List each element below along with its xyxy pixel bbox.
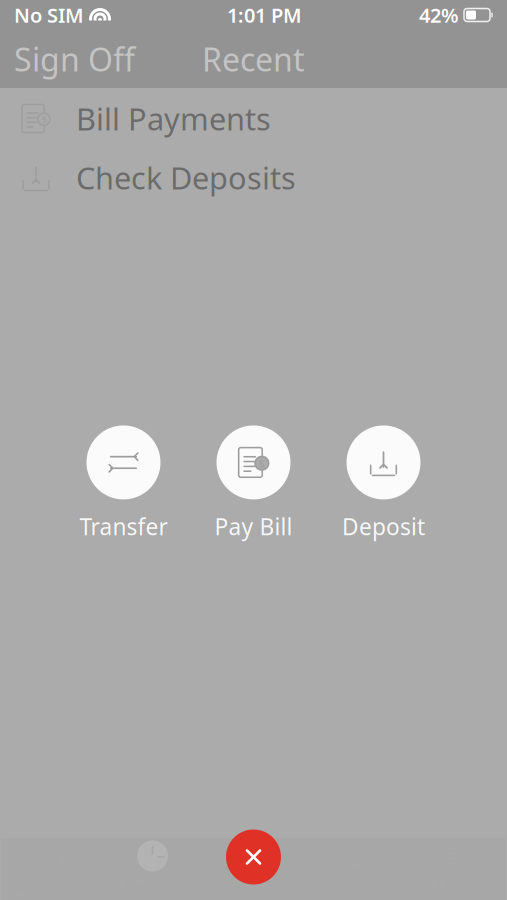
staticText: 1:01 PM [227, 2, 302, 28]
staticText: 42% [419, 2, 459, 28]
staticText: $ [41, 113, 46, 125]
staticText: Recent [202, 38, 305, 80]
button[interactable]: Deposit [318, 425, 448, 541]
button[interactable]: Recent [102, 838, 203, 900]
button[interactable]: $ [0, 89, 507, 148]
button[interactable]: Close [226, 829, 281, 884]
button[interactable]: $ [188, 425, 318, 541]
button[interactable]: Sign Off [0, 30, 149, 88]
staticText: Sign Off [14, 38, 135, 80]
staticText: Deposit [342, 511, 425, 541]
staticText: Transfer [79, 511, 167, 541]
staticText: Pay Bill [214, 511, 292, 541]
button[interactable]: Transfer [58, 425, 188, 541]
staticText: No SIM [14, 2, 84, 28]
staticText: Check Deposits [76, 157, 296, 198]
staticText: $ [259, 456, 265, 470]
staticText: Bill Payments [76, 98, 271, 139]
button[interactable]: Check Deposits [0, 148, 507, 207]
